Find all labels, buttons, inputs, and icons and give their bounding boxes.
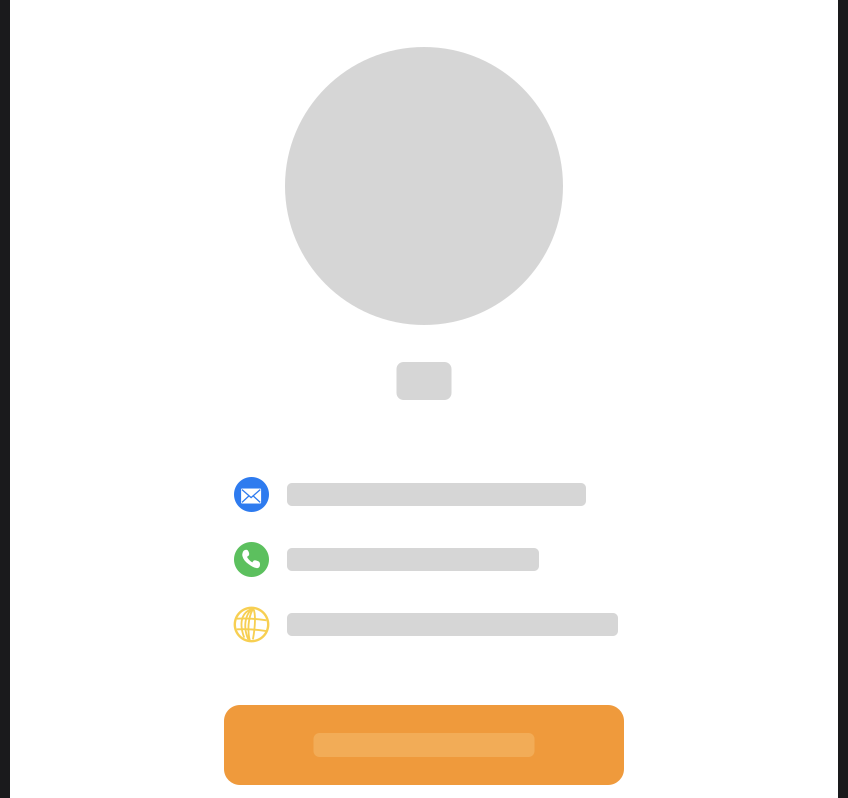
- button[interactable]: Website: [234, 607, 624, 642]
- button[interactable]: Save contact: [224, 705, 624, 785]
- button[interactable]: Email: [234, 477, 624, 512]
- button[interactable]: Call: [234, 542, 624, 577]
